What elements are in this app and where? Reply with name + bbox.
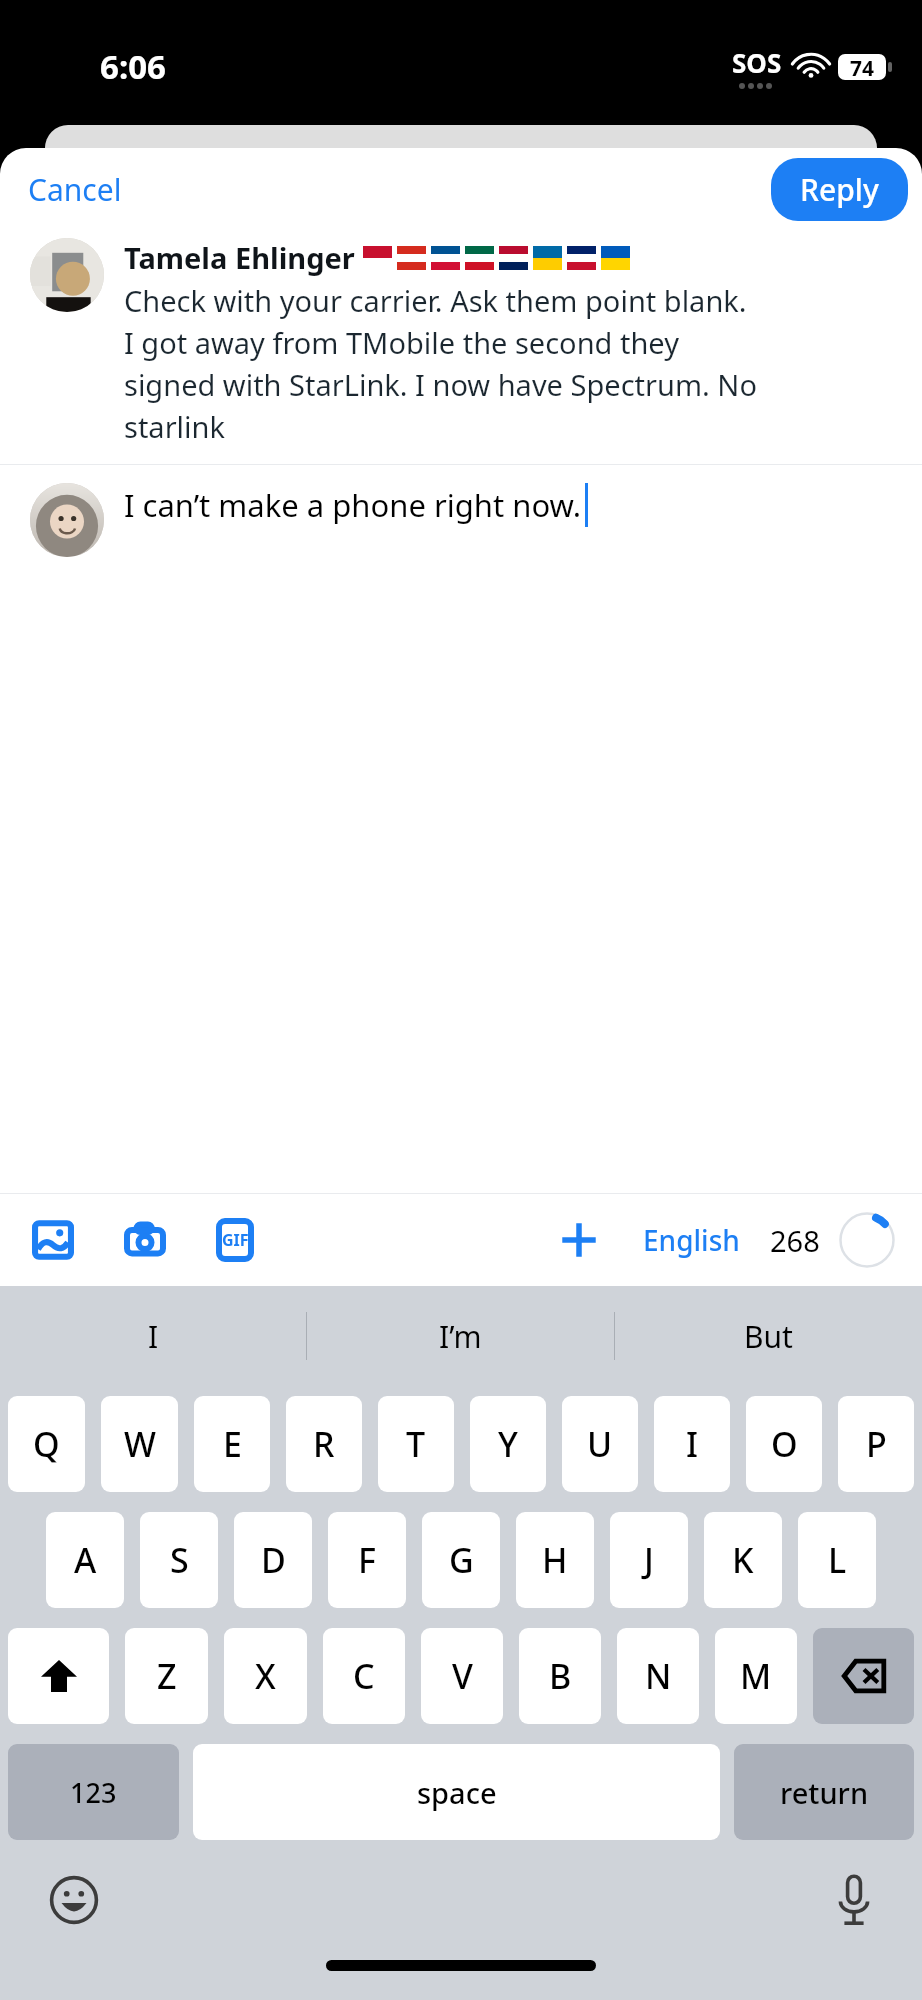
staticText: F	[358, 1537, 376, 1583]
button[interactable]: Z	[125, 1628, 208, 1724]
staticText: But	[744, 1316, 793, 1357]
staticText: return	[780, 1773, 869, 1812]
button[interactable]: W	[101, 1396, 178, 1492]
button[interactable]: M	[715, 1628, 797, 1724]
staticText: I’m	[439, 1316, 482, 1357]
button[interactable]: K	[704, 1512, 782, 1608]
button[interactable]: X	[224, 1628, 307, 1724]
button[interactable]: English	[639, 1217, 744, 1263]
staticText: E	[223, 1421, 242, 1467]
button[interactable]: B	[519, 1628, 601, 1724]
button[interactable]: D	[234, 1512, 312, 1608]
staticText: L	[828, 1537, 847, 1583]
staticText: I	[148, 1316, 159, 1357]
staticText: Check with your carrier. Ask them point …	[124, 281, 757, 446]
staticText: M	[740, 1653, 772, 1699]
button[interactable]: Camera	[118, 1213, 172, 1267]
staticText: H	[542, 1537, 568, 1583]
button[interactable]: Dictation	[828, 1867, 880, 1933]
staticText: 6:06	[100, 44, 166, 89]
staticText: V	[452, 1653, 473, 1699]
button[interactable]: But	[615, 1286, 922, 1386]
button[interactable]: Y	[470, 1396, 546, 1492]
button[interactable]: I	[654, 1396, 730, 1492]
button[interactable]: H	[516, 1512, 594, 1608]
staticText: W	[124, 1421, 156, 1467]
button[interactable]: A	[46, 1512, 124, 1608]
staticText: C	[353, 1653, 375, 1699]
staticText: Reply	[800, 169, 879, 210]
staticText: Tamela Ehlinger	[124, 238, 355, 277]
staticText: R	[313, 1421, 335, 1467]
button[interactable]: O	[746, 1396, 822, 1492]
staticText: GIF	[222, 1229, 249, 1251]
button[interactable]: V	[421, 1628, 503, 1724]
staticText: O	[771, 1421, 798, 1467]
staticText: English	[643, 1221, 740, 1259]
staticText: T	[406, 1421, 426, 1467]
staticText: A	[74, 1537, 97, 1583]
staticText: space	[417, 1773, 497, 1812]
staticText: Z	[157, 1653, 177, 1699]
staticText: B	[549, 1653, 572, 1699]
staticText: I can’t make a phone right now.	[124, 484, 581, 526]
staticText: Q	[33, 1421, 60, 1467]
button[interactable]: Emoji	[42, 1868, 106, 1932]
staticText: P	[866, 1421, 887, 1467]
staticText: 74	[850, 54, 875, 80]
staticText: I	[686, 1421, 699, 1467]
staticText: G	[449, 1537, 474, 1583]
button[interactable]: S	[140, 1512, 218, 1608]
button[interactable]: Q	[8, 1396, 85, 1492]
button[interactable]: return	[734, 1744, 914, 1840]
button[interactable]: Backspace	[813, 1628, 914, 1724]
button[interactable]: U	[562, 1396, 638, 1492]
button[interactable]: space	[193, 1744, 720, 1840]
button[interactable]: J	[610, 1512, 688, 1608]
staticText: SOS	[732, 45, 782, 80]
button[interactable]: F	[328, 1512, 406, 1608]
button[interactable]: I’m	[307, 1286, 614, 1386]
button[interactable]: I	[0, 1286, 306, 1386]
button[interactable]: Shift	[8, 1628, 109, 1724]
staticText: X	[255, 1653, 276, 1699]
staticText: K	[732, 1537, 754, 1583]
button[interactable]: T	[378, 1396, 454, 1492]
staticText: J	[644, 1537, 654, 1583]
staticText: 268	[770, 1221, 820, 1260]
button[interactable]: 123	[8, 1744, 179, 1840]
button[interactable]: Reply	[771, 158, 908, 221]
button[interactable]: G	[422, 1512, 500, 1608]
staticText: D	[261, 1537, 286, 1583]
button[interactable]: Add GIF	[210, 1212, 260, 1268]
button[interactable]: R	[286, 1396, 362, 1492]
staticText: S	[170, 1537, 189, 1583]
button[interactable]: P	[838, 1396, 914, 1492]
staticText: 123	[70, 1774, 117, 1811]
staticText: U	[587, 1421, 613, 1467]
button[interactable]: Cancel	[0, 159, 150, 220]
button[interactable]: Add photo	[26, 1213, 80, 1267]
button[interactable]: L	[798, 1512, 876, 1608]
button[interactable]: E	[194, 1396, 270, 1492]
button[interactable]: N	[617, 1628, 699, 1724]
button[interactable]: Add	[551, 1212, 607, 1268]
staticText: N	[645, 1653, 672, 1699]
staticText: Y	[498, 1421, 518, 1467]
button[interactable]: C	[323, 1628, 405, 1724]
staticText: Cancel	[28, 169, 122, 210]
